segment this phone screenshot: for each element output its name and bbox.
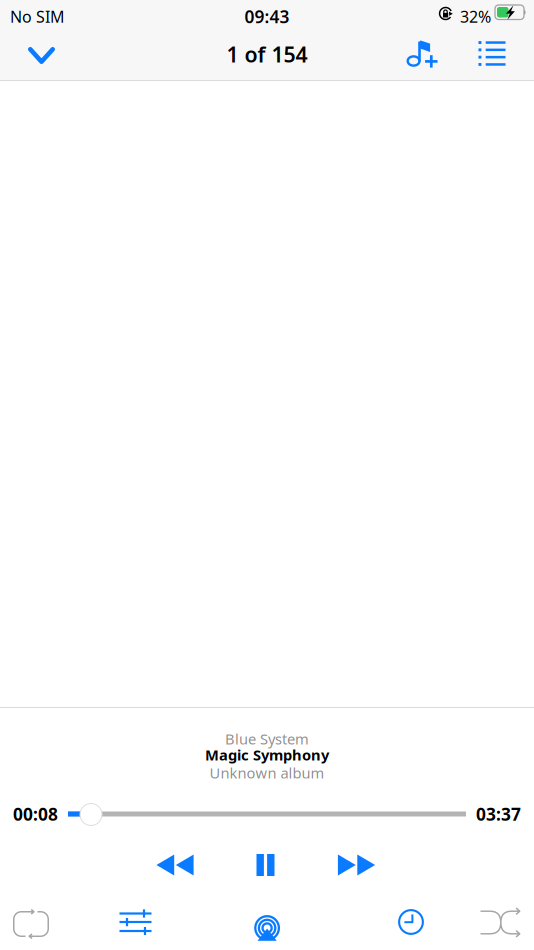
button[interactable]: Playing queue (468, 30, 516, 74)
staticText: 1 of 154 (226, 40, 307, 68)
button[interactable]: AirPlay (236, 906, 298, 950)
staticText: Unknown album (209, 763, 324, 782)
button[interactable]: Equalizer (104, 900, 166, 944)
staticText: 00:08 (13, 802, 58, 825)
staticText: 09:43 (244, 5, 289, 28)
staticText: 32% (460, 6, 491, 27)
button[interactable]: Pause (232, 843, 298, 887)
button[interactable]: Add to playlist (399, 32, 447, 76)
staticText: No SIM (10, 6, 65, 27)
staticText: Blue System (225, 729, 309, 748)
staticText: 03:37 (476, 802, 521, 825)
button[interactable]: Sleep timer (380, 900, 442, 944)
button[interactable]: Collapse player (14, 33, 68, 77)
button[interactable]: Shuffle (470, 900, 532, 944)
button[interactable]: Repeat (0, 902, 62, 946)
button[interactable]: Rewind (142, 843, 208, 887)
staticText: Magic Symphony (205, 745, 329, 764)
button[interactable]: Fast forward (323, 843, 389, 887)
